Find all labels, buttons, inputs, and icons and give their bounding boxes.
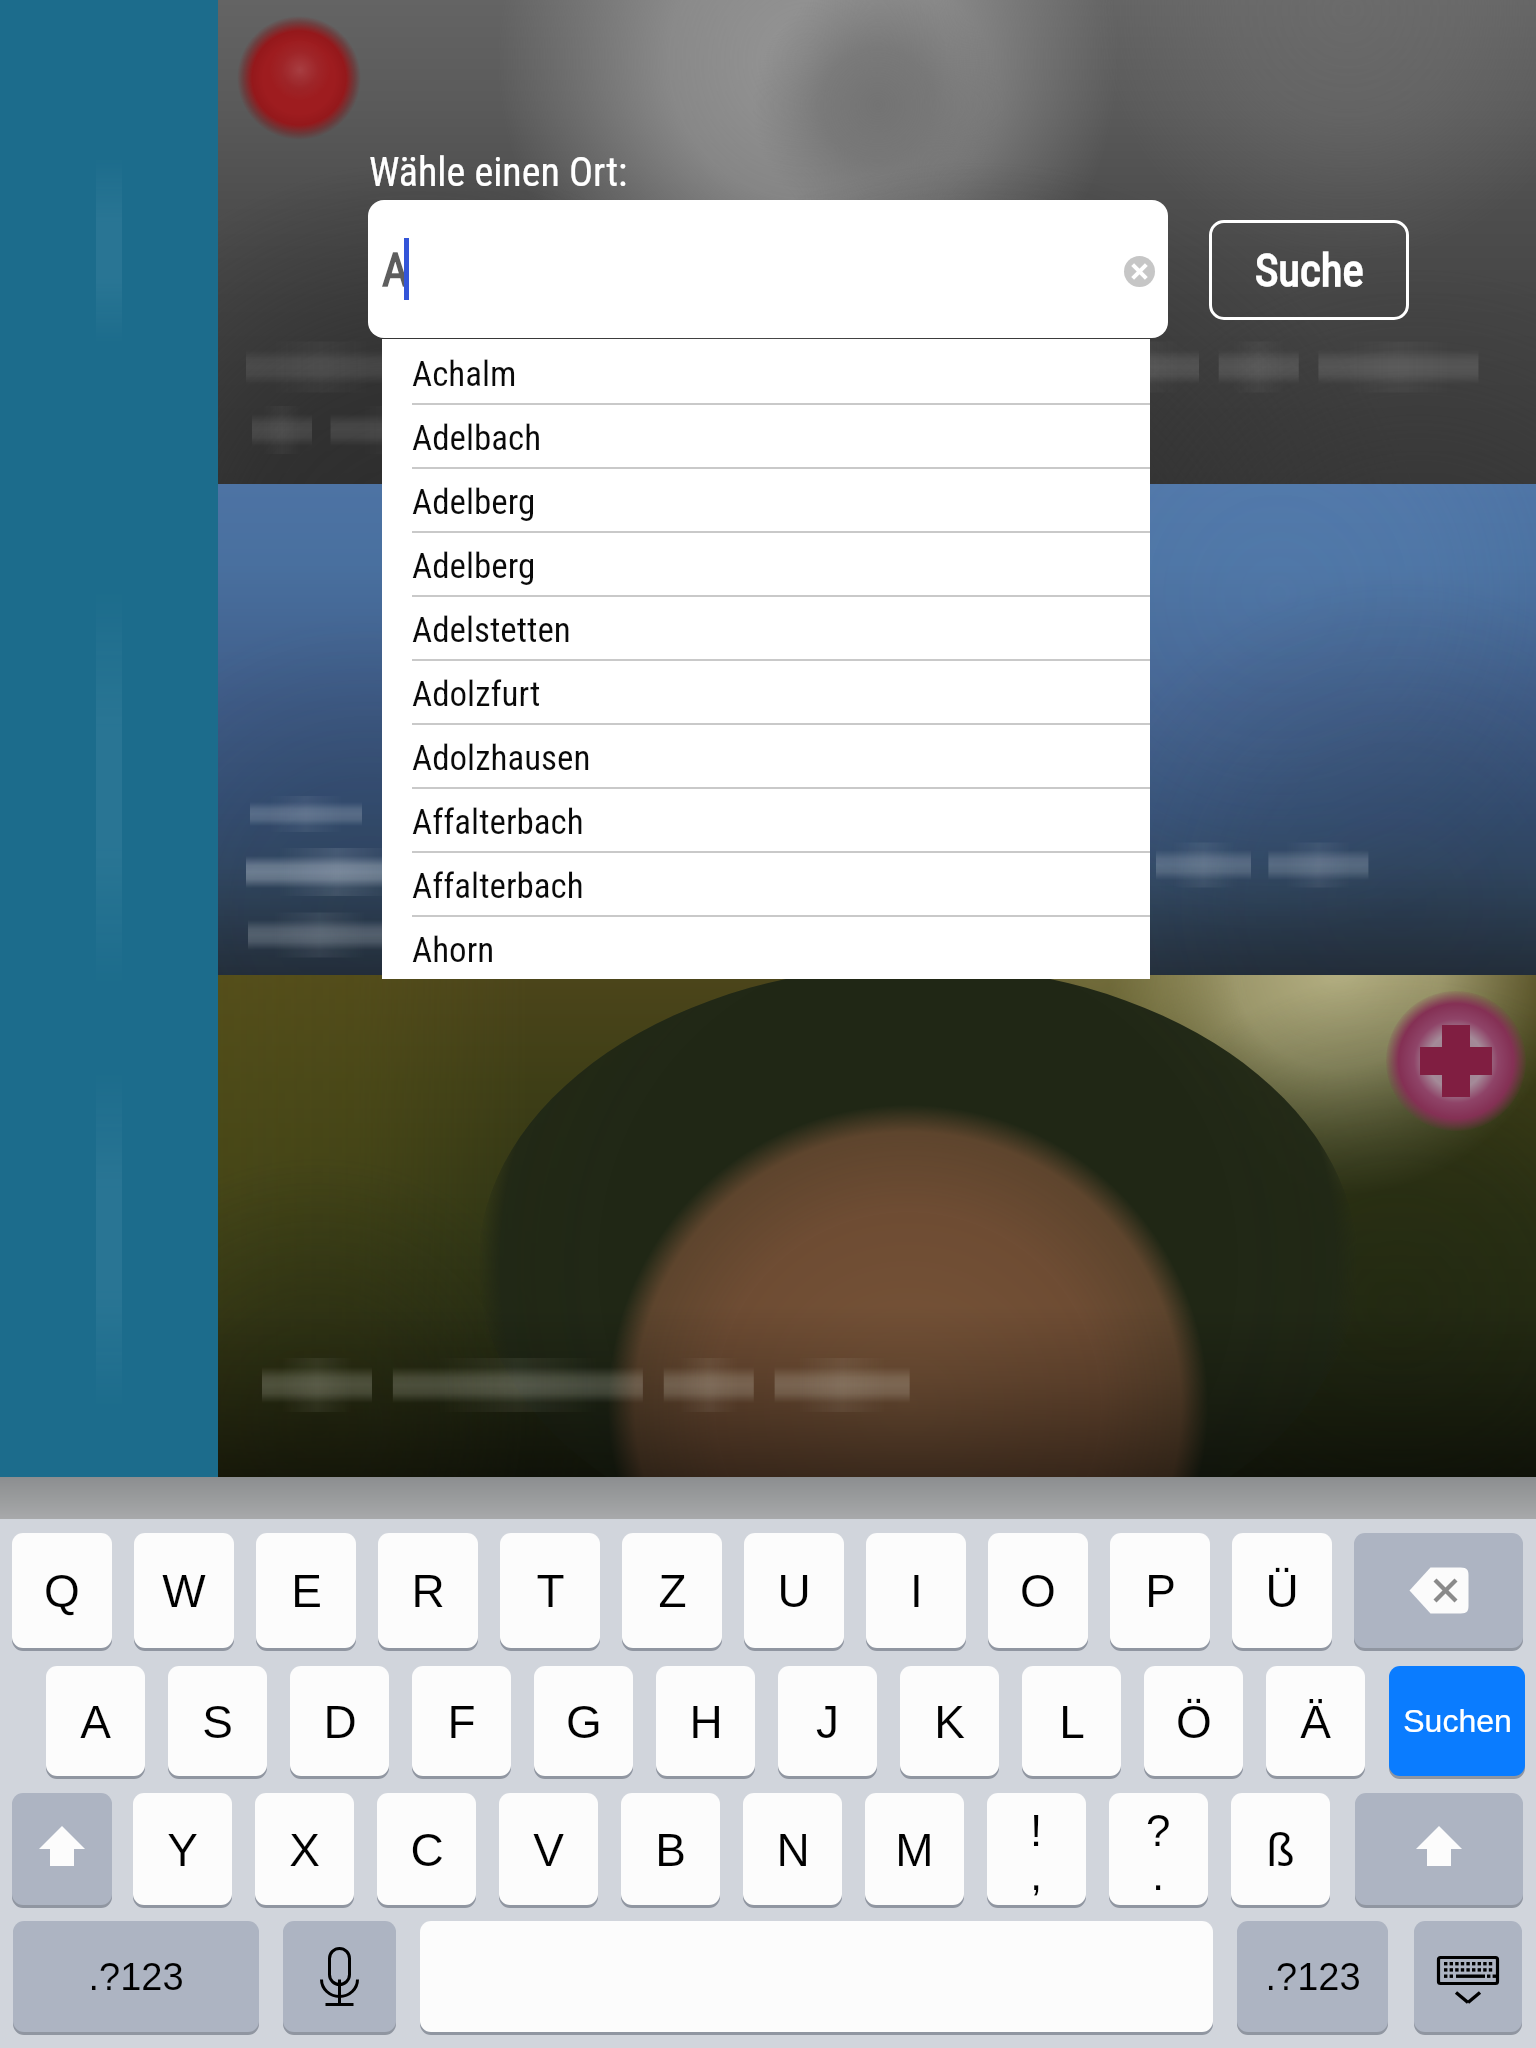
staticText: S [202, 1696, 233, 1747]
staticText: T [536, 1565, 565, 1616]
button[interactable]: Backspace [1354, 1533, 1523, 1648]
button[interactable]: Clear text [1124, 256, 1155, 287]
button[interactable]: Dictate [283, 1921, 396, 2032]
button[interactable]: .?123 [1237, 1921, 1388, 2032]
button[interactable]: .?123 [13, 1921, 259, 2032]
staticText: W [162, 1565, 206, 1616]
button[interactable]: Suchen [1389, 1666, 1525, 1776]
staticText: Adelbach [412, 418, 542, 459]
button[interactable]: Q [12, 1533, 112, 1648]
button[interactable]: A [368, 200, 1168, 338]
staticText: A [80, 1696, 111, 1747]
staticText: , [1030, 1850, 1043, 1899]
staticText: Wähle einen Ort: [369, 149, 628, 196]
staticText: U [777, 1565, 811, 1616]
button[interactable]: S [168, 1666, 267, 1776]
staticText: Ä [1300, 1696, 1331, 1747]
staticText: Adelberg [412, 482, 536, 523]
button[interactable]: Affalterbach [382, 787, 1150, 851]
staticText: O [1020, 1565, 1056, 1616]
staticText: Suche [1255, 244, 1364, 297]
button[interactable]: Shift [1355, 1793, 1523, 1905]
staticText: E [291, 1565, 322, 1616]
button[interactable]: X [255, 1793, 354, 1905]
button[interactable]: R [378, 1533, 478, 1648]
button[interactable]: I [866, 1533, 966, 1648]
staticText: P [1145, 1565, 1176, 1616]
staticText: Adelstetten [412, 610, 571, 651]
button[interactable]: Ü [1232, 1533, 1332, 1648]
button[interactable]: U [744, 1533, 844, 1648]
button[interactable]: G [534, 1666, 633, 1776]
staticText: Affalterbach [412, 866, 584, 907]
button[interactable]: Y [133, 1793, 232, 1905]
staticText: L [1059, 1696, 1085, 1747]
staticText: N [776, 1824, 810, 1875]
staticText: . [1152, 1850, 1165, 1899]
staticText: Ü [1265, 1565, 1299, 1616]
button[interactable]: P [1110, 1533, 1210, 1648]
staticText: Z [658, 1565, 687, 1616]
button[interactable]: Adelberg [382, 467, 1150, 531]
button[interactable]: A [46, 1666, 145, 1776]
staticText: Adelberg [412, 546, 536, 587]
button[interactable]: ! [987, 1793, 1086, 1905]
button[interactable]: Z [622, 1533, 722, 1648]
button[interactable]: O [988, 1533, 1088, 1648]
staticText: K [934, 1696, 965, 1747]
button[interactable]: Affalterbach [382, 851, 1150, 915]
staticText: D [323, 1696, 357, 1747]
staticText: ? [1146, 1806, 1171, 1855]
button[interactable]: Achalm [382, 339, 1150, 403]
button[interactable]: V [499, 1793, 598, 1905]
button[interactable]: H [656, 1666, 755, 1776]
staticText: Achalm [412, 354, 517, 395]
staticText: H [689, 1696, 723, 1747]
staticText: Adolzhausen [412, 738, 591, 779]
button[interactable]: E [256, 1533, 356, 1648]
staticText: .?123 [1265, 1956, 1361, 1998]
staticText: .?123 [88, 1956, 184, 1998]
button[interactable]: L [1022, 1666, 1121, 1776]
staticText: Ö [1176, 1696, 1212, 1747]
button[interactable]: W [134, 1533, 234, 1648]
button[interactable]: K [900, 1666, 999, 1776]
staticText: M [895, 1824, 934, 1875]
staticText: Q [44, 1565, 80, 1616]
staticText: ! [1030, 1806, 1043, 1855]
staticText: Adolzfurt [412, 674, 541, 715]
button[interactable]: ß [1231, 1793, 1330, 1905]
button[interactable]: Ä [1266, 1666, 1365, 1776]
button[interactable]: T [500, 1533, 600, 1648]
button[interactable]: Adolzfurt [382, 659, 1150, 723]
staticText: V [533, 1824, 564, 1875]
staticText: F [447, 1696, 476, 1747]
button[interactable]: N [743, 1793, 842, 1905]
staticText: R [411, 1565, 445, 1616]
button[interactable]: D [290, 1666, 389, 1776]
button[interactable]: Suche [1209, 220, 1409, 320]
button[interactable]: J [778, 1666, 877, 1776]
button[interactable]: Adelstetten [382, 595, 1150, 659]
button[interactable]: Adelberg [382, 531, 1150, 595]
button[interactable]: M [865, 1793, 964, 1905]
staticText: C [410, 1824, 444, 1875]
button[interactable]: ? [1109, 1793, 1208, 1905]
staticText: J [816, 1696, 839, 1747]
button[interactable]: Adelbach [382, 403, 1150, 467]
button[interactable]: Ö [1144, 1666, 1243, 1776]
button[interactable]: Shift [12, 1793, 112, 1905]
button[interactable]: Ahorn [382, 915, 1150, 979]
button[interactable]: C [377, 1793, 476, 1905]
staticText: G [566, 1696, 602, 1747]
staticText: Ahorn [412, 930, 495, 971]
staticText: Suchen [1403, 1703, 1512, 1739]
button[interactable]: Hide keyboard [1414, 1921, 1522, 2032]
staticText: Affalterbach [412, 802, 584, 843]
staticText: I [910, 1565, 923, 1616]
staticText: ß [1266, 1824, 1295, 1875]
button[interactable]: Adolzhausen [382, 723, 1150, 787]
button[interactable]: B [621, 1793, 720, 1905]
button[interactable]: F [412, 1666, 511, 1776]
